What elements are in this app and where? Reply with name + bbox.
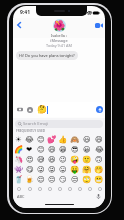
button[interactable]: 😏	[57, 174, 69, 184]
staticText: Search Emoji	[23, 121, 49, 127]
staticText: 🤗	[82, 165, 92, 174]
button[interactable]: Emoji category	[55, 184, 65, 193]
button[interactable]: Emoji category	[45, 184, 55, 193]
button[interactable]: 😁	[57, 144, 69, 154]
button[interactable]: Emoji category	[24, 184, 35, 193]
button[interactable]: 😀	[81, 144, 93, 154]
staticText: 🌈	[14, 145, 24, 154]
button[interactable]: 😃	[81, 134, 93, 144]
button[interactable]: 🦄	[13, 154, 24, 164]
button[interactable]: Emoji category	[95, 184, 105, 193]
button[interactable]: 🤭	[93, 164, 105, 174]
staticText: 💕	[47, 135, 57, 144]
staticText: 😎	[71, 145, 79, 154]
button[interactable]: Emoji category	[65, 184, 75, 193]
staticText: ❤️	[26, 145, 33, 154]
staticText: 😆	[48, 155, 56, 164]
button[interactable]: 🌺	[51, 19, 67, 38]
button[interactable]: Back	[14, 20, 24, 30]
staticText: 😝	[48, 165, 56, 174]
staticText: 😬	[94, 175, 104, 184]
staticText: 😊	[37, 145, 45, 154]
button[interactable]: Hi! Do you have plans tonight?	[19, 53, 75, 58]
button[interactable]: 😊	[35, 134, 46, 144]
button[interactable]: 🌈	[13, 144, 24, 154]
button[interactable]: ❤️	[24, 144, 35, 154]
button[interactable]: 😌	[35, 174, 46, 184]
staticText: iMessage	[13, 38, 105, 43]
staticText: 9:41	[20, 9, 30, 16]
button[interactable]: Camera	[15, 105, 24, 114]
button[interactable]: 😆	[46, 154, 57, 164]
staticText: Hi! Do you have plans tonight?	[19, 53, 75, 58]
button[interactable]: 🙃	[93, 154, 105, 164]
button[interactable]: 🙈	[69, 134, 81, 144]
staticText: Today 9:41 AM	[13, 43, 105, 48]
staticText: 😋	[26, 165, 34, 174]
staticText: 🦄	[14, 155, 24, 164]
button[interactable]: 😊	[35, 144, 46, 154]
button[interactable]: 😔	[46, 174, 57, 184]
staticText: 😀	[83, 145, 91, 154]
button[interactable]: 🍺	[24, 174, 35, 184]
staticText: 🙈	[70, 135, 80, 144]
staticText: ☀️	[15, 135, 22, 144]
staticText: 😄	[48, 145, 56, 154]
button[interactable]: 😄	[93, 134, 105, 144]
button[interactable]: Emoji category	[35, 184, 45, 193]
button[interactable]: 😎	[69, 144, 81, 154]
button[interactable]: 🙄	[81, 174, 93, 184]
button[interactable]: 😬	[93, 174, 105, 184]
staticText: 😃	[83, 135, 91, 144]
button[interactable]: Emoji category	[75, 184, 85, 193]
button[interactable]: 😅	[35, 154, 46, 164]
button[interactable]: Send	[96, 106, 103, 113]
button[interactable]: 😝	[46, 164, 57, 174]
staticText: 😍	[26, 155, 34, 164]
staticText: 😂	[95, 145, 104, 154]
staticText: 🤪	[70, 155, 80, 164]
button[interactable]: 🤗	[81, 164, 93, 174]
staticText: Isabella ›	[51, 33, 67, 38]
staticText: 😊	[37, 135, 45, 144]
button[interactable]: 🤔	[35, 102, 104, 117]
staticText: 🙃	[95, 155, 103, 164]
button[interactable]: 😄	[46, 144, 57, 154]
staticText: 😒	[71, 175, 79, 184]
button[interactable]: ABC	[17, 194, 25, 199]
staticText: 🙂	[82, 155, 92, 164]
staticText: 😛	[59, 165, 67, 174]
button[interactable]: 😒	[69, 174, 81, 184]
staticText: 😁	[59, 145, 67, 154]
button[interactable]: ☀️	[13, 134, 24, 144]
staticText: 😏	[59, 175, 67, 184]
staticText: 😂	[25, 135, 34, 144]
button[interactable]: 🥤	[13, 174, 24, 184]
button[interactable]: 🤪	[69, 154, 81, 164]
staticText: 🍺	[25, 175, 35, 184]
button[interactable]: Dictate	[95, 193, 101, 199]
staticText: 😔	[48, 175, 56, 184]
button[interactable]: 😂	[24, 134, 35, 144]
staticText: 😜	[37, 165, 45, 174]
button[interactable]: Emoji category	[13, 184, 24, 193]
button[interactable]: 😉	[57, 154, 69, 164]
button[interactable]: 😂	[93, 144, 105, 154]
button[interactable]: 👍	[57, 134, 69, 144]
button[interactable]: 👾	[13, 164, 24, 174]
button[interactable]: Apps	[25, 105, 34, 114]
button[interactable]: 😛	[57, 164, 69, 174]
staticText: 🌺	[53, 20, 66, 32]
button[interactable]: Emoji category	[85, 184, 95, 193]
button[interactable]: 😋	[24, 164, 35, 174]
button[interactable]: 💕	[46, 134, 57, 144]
button[interactable]: Video call	[94, 20, 104, 30]
button[interactable]: 🤑	[69, 164, 81, 174]
staticText: 😉	[59, 155, 67, 164]
staticText: 🤑	[70, 165, 80, 174]
button[interactable]: 🙂	[81, 154, 93, 164]
button[interactable]: 😍	[24, 154, 35, 164]
button[interactable]: 😜	[35, 164, 46, 174]
button[interactable]: Search Emoji	[15, 120, 103, 128]
staticText: 👾	[14, 165, 24, 174]
